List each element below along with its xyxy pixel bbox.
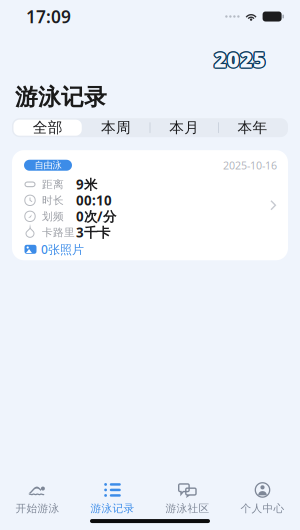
staticText: 划频	[42, 210, 64, 223]
button[interactable]: 游泳社区	[150, 478, 225, 519]
button[interactable]: 个人中心	[225, 478, 300, 519]
staticText: 全部	[33, 119, 63, 137]
staticText: 游泳社区	[165, 502, 209, 515]
staticText: 2025	[215, 46, 267, 74]
staticText: 本周	[101, 119, 131, 137]
staticText: 0张照片	[41, 241, 84, 257]
staticText: 0次/分	[76, 207, 116, 225]
staticText: 2025	[214, 44, 266, 72]
staticText: 2025	[215, 45, 267, 73]
staticText: 距离	[42, 178, 64, 191]
staticText: 2025	[214, 46, 266, 74]
staticText: 2025	[214, 45, 266, 73]
staticText: 2025	[213, 44, 265, 72]
button[interactable]: 本周	[82, 120, 150, 136]
staticText: 9米	[76, 175, 97, 193]
staticText: 个人中心	[240, 502, 284, 515]
staticText: 2025	[215, 44, 267, 72]
staticText: 00:10	[76, 191, 112, 209]
staticText: 游泳记录	[90, 502, 134, 515]
staticText: 2025-10-16	[223, 158, 277, 172]
staticText: 时长	[42, 194, 64, 207]
button[interactable]: 全部	[13, 120, 82, 136]
button[interactable]: 本年	[218, 120, 286, 136]
staticText: 2025	[213, 45, 265, 73]
staticText: 本月	[169, 119, 199, 137]
button[interactable]: 游泳记录	[75, 478, 150, 519]
staticText: 开始游泳	[15, 502, 59, 515]
staticText: 卡路里	[42, 226, 75, 239]
staticText: 自由泳	[34, 159, 61, 171]
staticText: 3千卡	[76, 223, 110, 241]
staticText: 游泳记录	[15, 83, 107, 111]
staticText: 本年	[237, 119, 267, 137]
button[interactable]: 自由泳	[12, 150, 288, 260]
staticText: 17:09	[26, 5, 71, 28]
button[interactable]: 开始游泳	[0, 478, 75, 519]
staticText: 2025	[213, 46, 265, 74]
button[interactable]: 本月	[150, 120, 218, 136]
